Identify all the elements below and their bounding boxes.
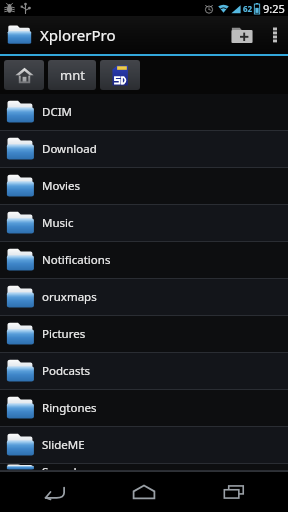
staticText: Movies <box>42 178 80 194</box>
button[interactable]: oruxmaps <box>0 279 288 316</box>
staticText: Notifications <box>42 252 111 268</box>
button[interactable]: mnt <box>48 60 96 90</box>
button[interactable]: Sounds <box>0 464 288 471</box>
button[interactable]: Home <box>4 60 44 90</box>
staticText: Pictures <box>42 326 86 342</box>
button[interactable]: Back <box>18 472 90 512</box>
staticText: XplorerPro <box>40 25 116 45</box>
staticText: SlideME <box>42 437 85 453</box>
button[interactable]: DCIM <box>0 94 288 131</box>
button[interactable]: New folder <box>222 16 262 54</box>
button[interactable]: Ringtones <box>0 390 288 427</box>
staticText: Podcasts <box>42 363 91 379</box>
button[interactable]: Home <box>108 472 180 512</box>
button[interactable]: SlideME <box>0 427 288 464</box>
button[interactable]: SD card <box>100 60 140 90</box>
button[interactable]: Pictures <box>0 316 288 353</box>
staticText: Download <box>42 141 97 157</box>
staticText: mnt <box>60 66 85 84</box>
button[interactable]: Download <box>0 131 288 168</box>
staticText: DCIM <box>42 104 72 120</box>
button[interactable]: Podcasts <box>0 353 288 390</box>
staticText: oruxmaps <box>42 289 97 305</box>
button[interactable]: XplorerPro <box>7 24 116 46</box>
button[interactable]: Recent apps <box>198 472 270 512</box>
button[interactable]: Notifications <box>0 242 288 279</box>
staticText: Ringtones <box>42 400 97 416</box>
button[interactable]: Movies <box>0 168 288 205</box>
staticText: 62 <box>243 3 253 14</box>
staticText: Music <box>42 215 74 231</box>
button[interactable]: Music <box>0 205 288 242</box>
staticText: Sounds <box>42 464 83 470</box>
staticText: 9:25 <box>263 1 285 16</box>
button[interactable]: More options <box>262 16 288 54</box>
